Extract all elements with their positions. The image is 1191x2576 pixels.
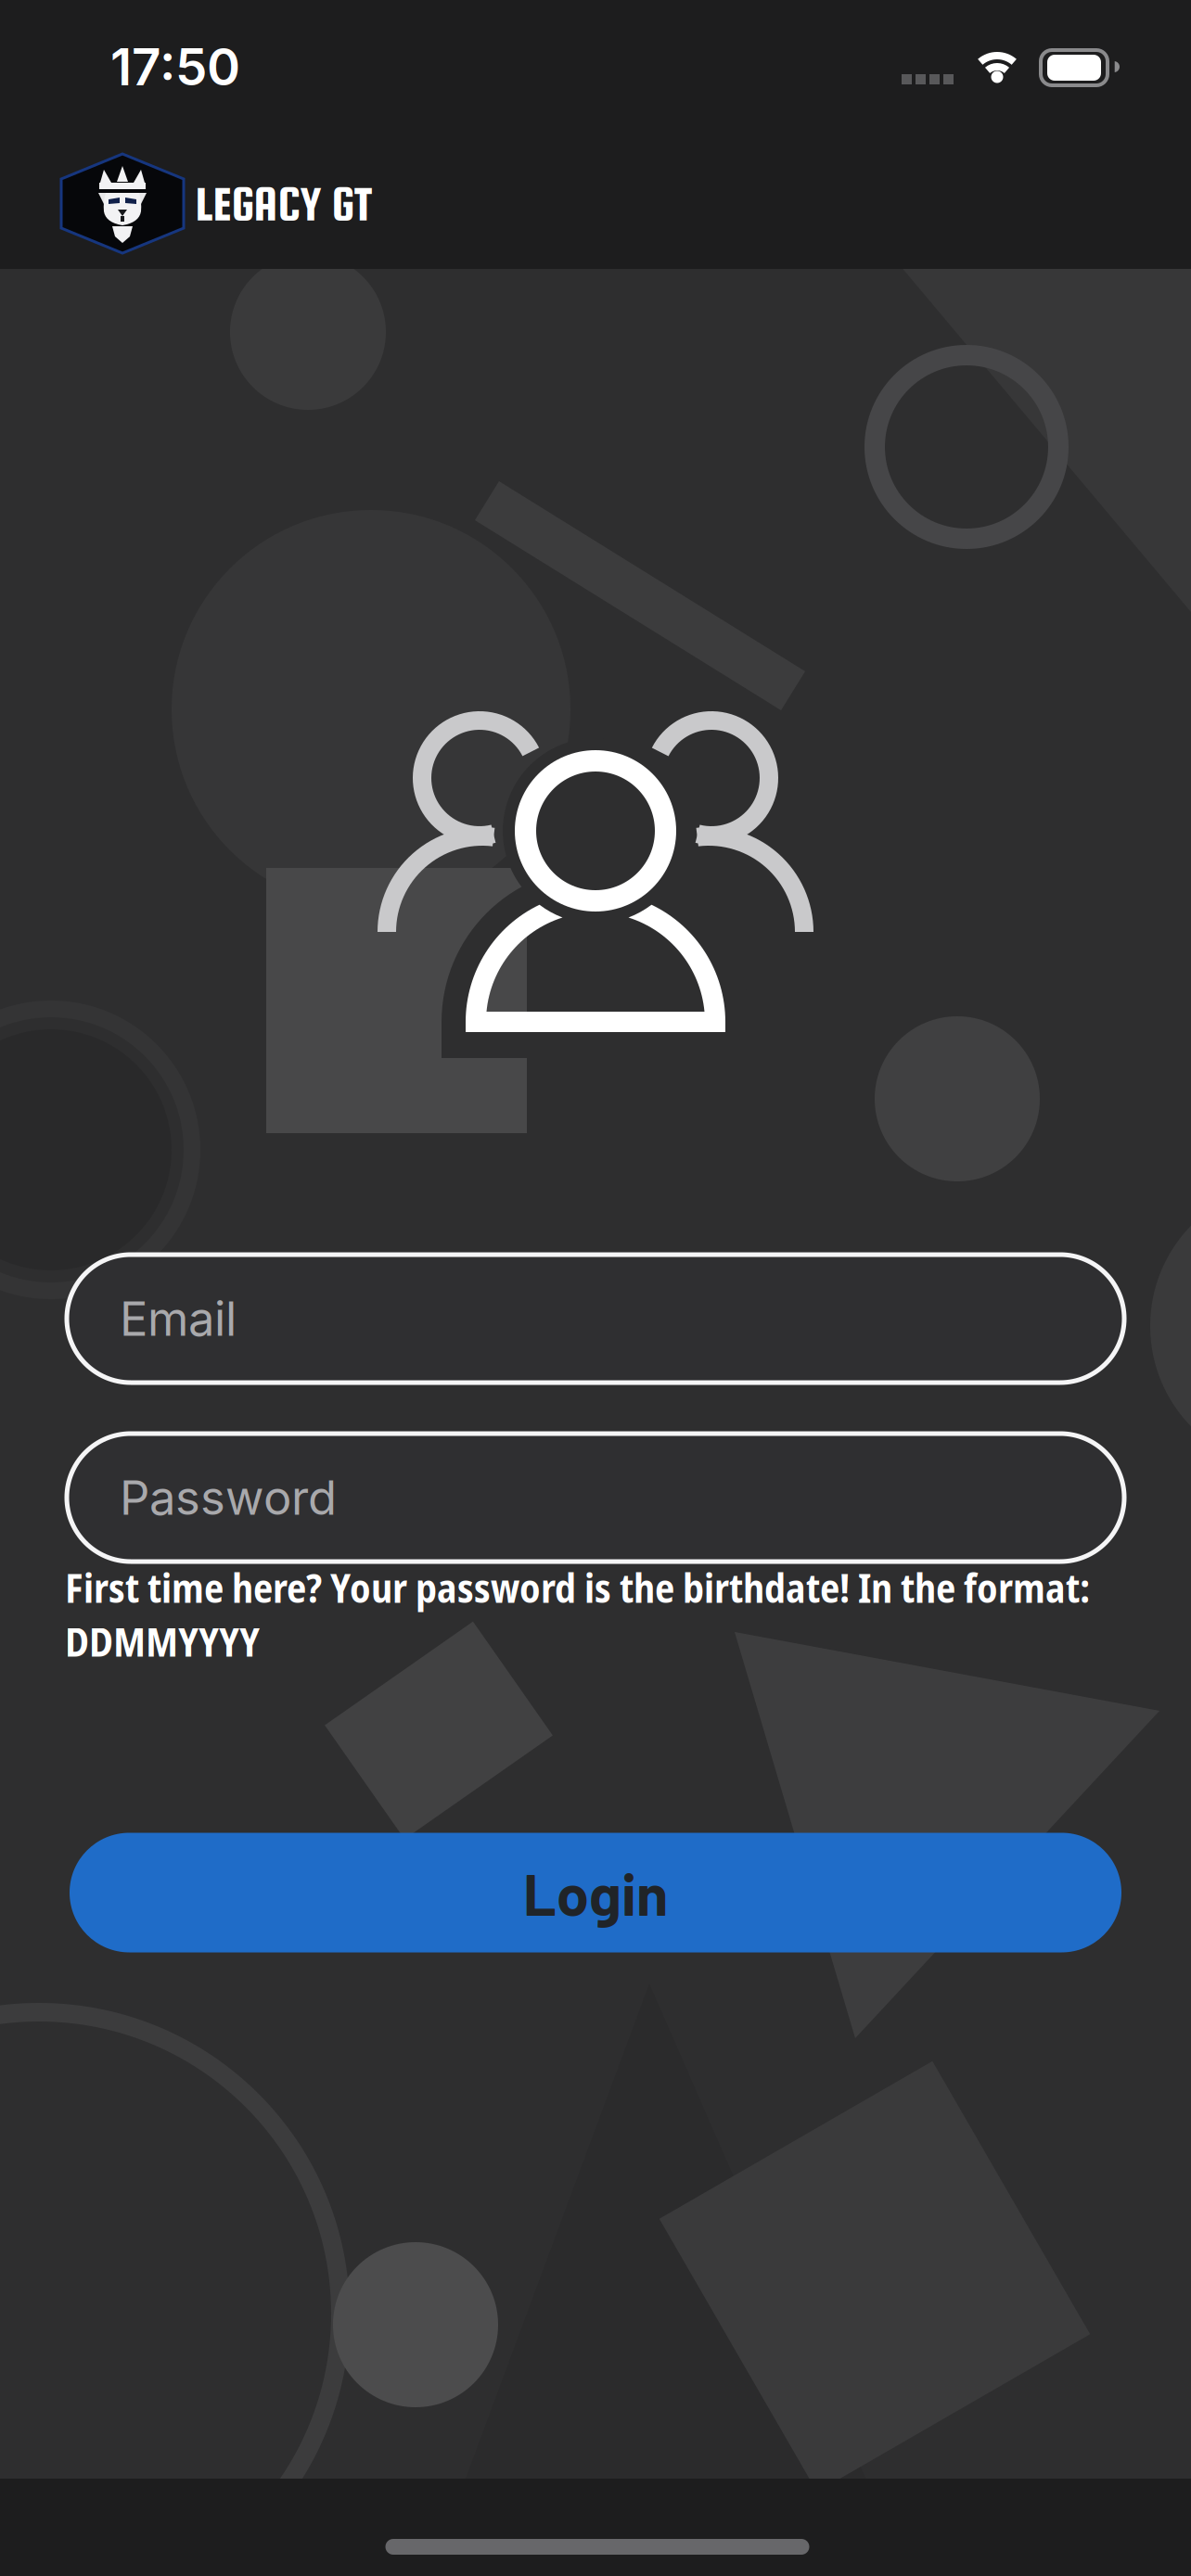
staticText: LEGACY GT [195, 178, 372, 230]
button[interactable]: Login [70, 1833, 1121, 1952]
staticText: First time here? Your password is the bi… [65, 1561, 1090, 1614]
staticText: Email [120, 1290, 237, 1347]
button[interactable]: Email [67, 1255, 1124, 1383]
staticText: Login [523, 1858, 668, 1927]
staticText: DDMMYYYY [65, 1614, 260, 1668]
staticText: 17:50 [110, 36, 240, 97]
staticText: Password [120, 1469, 337, 1526]
button[interactable]: Password [67, 1434, 1124, 1562]
